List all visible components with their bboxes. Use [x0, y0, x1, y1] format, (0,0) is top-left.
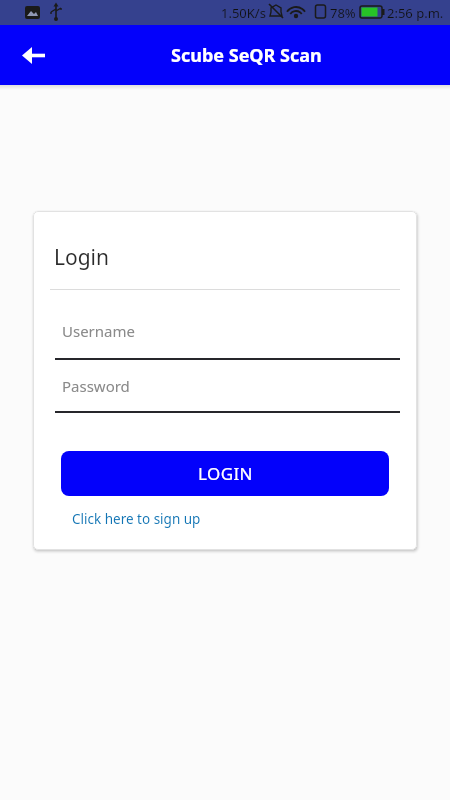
staticText: 2:56 p.m.: [387, 4, 444, 22]
button[interactable]: Click here to sign up: [72, 510, 201, 528]
staticText: Username: [62, 321, 135, 341]
staticText: 1.50K/s: [221, 4, 266, 22]
staticText: LOGIN: [198, 462, 253, 485]
button[interactable]: LOGIN: [61, 451, 389, 496]
staticText: Scube SeQR Scan: [171, 43, 322, 68]
staticText: 78%: [330, 4, 356, 22]
button[interactable]: [22, 47, 45, 64]
staticText: Login: [54, 243, 110, 272]
staticText: Password: [62, 376, 130, 396]
